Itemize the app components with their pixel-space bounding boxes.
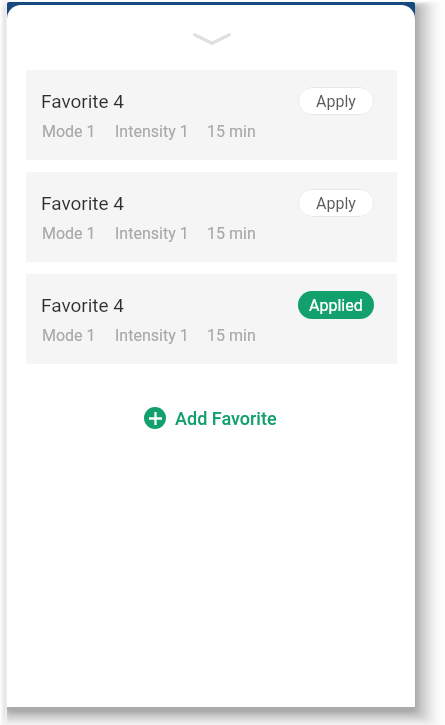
button[interactable]: Add Favorite — [144, 400, 277, 436]
staticText: Favorite 4 — [41, 90, 125, 112]
staticText: Mode 1 — [42, 224, 96, 243]
staticText: Mode 1 — [42, 326, 96, 345]
button[interactable]: Favorite 4 — [26, 70, 397, 160]
staticText: Mode 1 — [42, 122, 96, 141]
button[interactable]: Collapse — [175, 19, 249, 59]
button[interactable]: Apply — [298, 189, 374, 217]
staticText: Intensity 1 — [115, 122, 189, 141]
staticText: Add Favorite — [175, 408, 277, 429]
staticText: Intensity 1 — [115, 326, 189, 345]
button[interactable]: Applied — [298, 291, 374, 319]
staticText: 15 min — [207, 326, 256, 345]
staticText: Intensity 1 — [115, 224, 189, 243]
button[interactable]: Favorite 4 — [26, 274, 397, 364]
staticText: 15 min — [207, 224, 256, 243]
staticText: 15 min — [207, 122, 256, 141]
staticText: Favorite 4 — [41, 294, 125, 316]
button[interactable]: Apply — [298, 87, 374, 115]
staticText: Applied — [309, 296, 363, 315]
staticText: Apply — [316, 194, 356, 213]
staticText: Favorite 4 — [41, 192, 125, 214]
staticText: Apply — [316, 92, 356, 111]
button[interactable]: Favorite 4 — [26, 172, 397, 262]
